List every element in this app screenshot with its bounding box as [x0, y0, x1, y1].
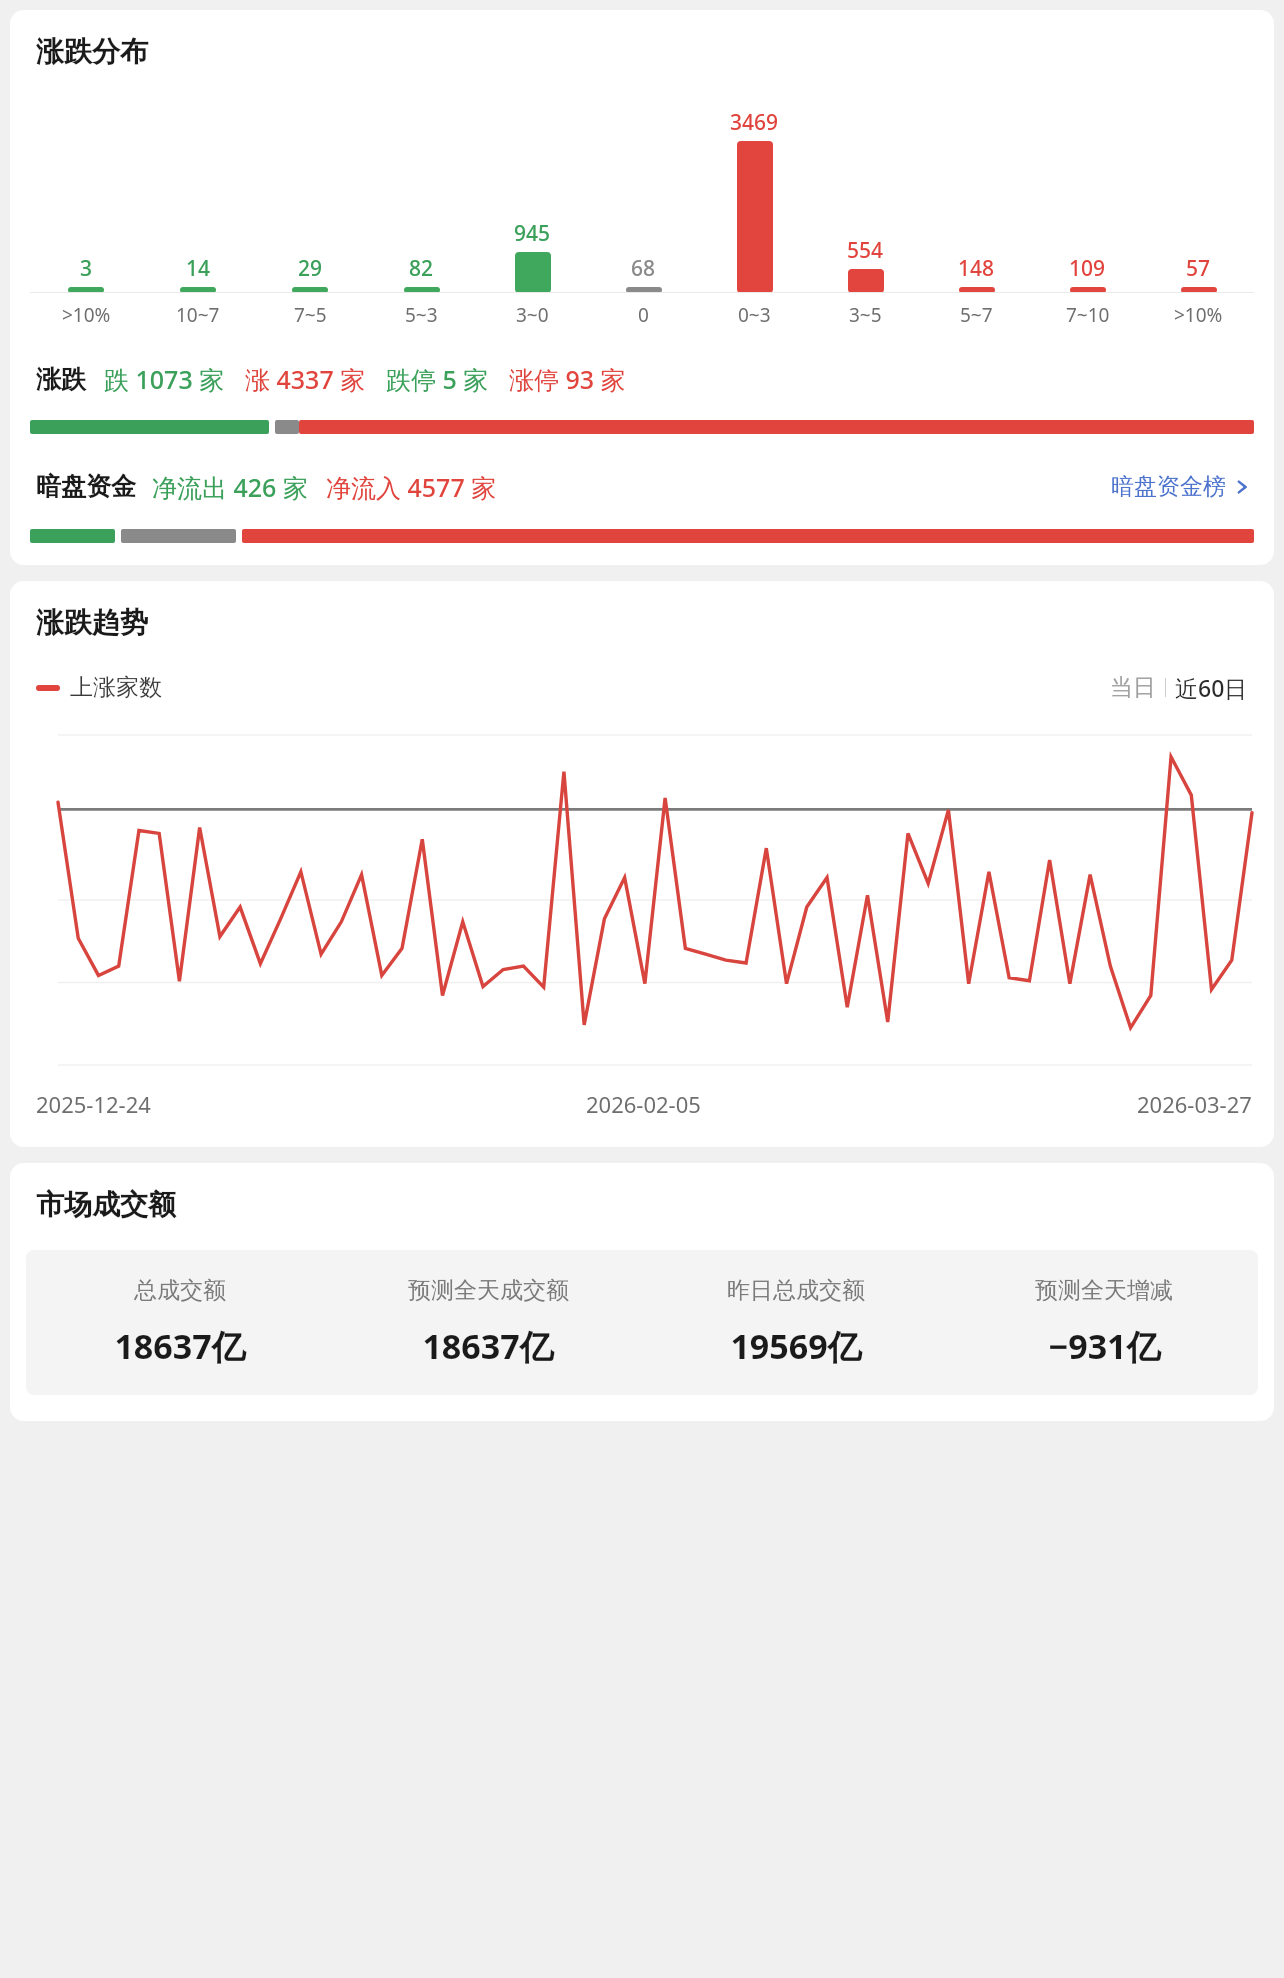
staticText: 涨停 93 家	[509, 362, 626, 396]
button[interactable]: 总成交额	[26, 1250, 1258, 1395]
staticText: 净流出 426 家	[152, 470, 308, 504]
staticText: 预测全天增减	[1035, 1276, 1173, 1305]
staticText: −931亿	[1048, 1323, 1161, 1369]
staticText: 暗盘资金	[36, 471, 136, 502]
staticText: 57	[1186, 254, 1211, 283]
button[interactable]: 暗盘资金榜	[1107, 468, 1254, 505]
staticText: 当日	[1110, 673, 1156, 702]
staticText: 68	[631, 254, 656, 283]
button[interactable]: 当日	[1106, 668, 1252, 707]
staticText: 18637亿	[422, 1323, 554, 1369]
staticText: 10~7	[176, 302, 220, 328]
staticText: 148	[958, 254, 995, 283]
staticText: >10%	[62, 302, 111, 328]
staticText: 昨日总成交额	[727, 1276, 865, 1305]
staticText: 19569亿	[730, 1323, 862, 1369]
staticText: 近60日	[1175, 672, 1248, 703]
staticText: 7~5	[294, 302, 327, 328]
staticText: 0	[638, 302, 649, 328]
staticText: 5~3	[405, 302, 438, 328]
staticText: 2026-02-05	[586, 1089, 701, 1119]
staticText: 涨 4337 家	[245, 362, 366, 396]
staticText: 2026-03-27	[1137, 1089, 1252, 1119]
staticText: 18637亿	[114, 1323, 246, 1369]
staticText: 市场成交额	[36, 1187, 176, 1222]
staticText: 0~3	[738, 302, 771, 328]
staticText: 2025-12-24	[36, 1089, 151, 1119]
staticText: 预测全天成交额	[408, 1276, 569, 1305]
staticText: 29	[298, 254, 323, 283]
other: 查看暗盘资金榜	[1234, 479, 1250, 495]
staticText: 554	[847, 236, 884, 265]
staticText: 109	[1069, 254, 1106, 283]
staticText: >10%	[1174, 302, 1223, 328]
staticText: 3~5	[849, 302, 882, 328]
staticText: 暗盘资金榜	[1111, 472, 1226, 501]
staticText: 涨跌分布	[36, 34, 148, 69]
staticText: 总成交额	[134, 1276, 226, 1305]
staticText: 5~7	[960, 302, 993, 328]
staticText: 7~10	[1066, 302, 1110, 328]
staticText: 3~0	[516, 302, 549, 328]
staticText: 945	[514, 219, 551, 248]
staticText: 上涨家数	[70, 673, 162, 702]
staticText: 跌 1073 家	[104, 362, 225, 396]
staticText: 涨跌	[36, 364, 86, 395]
staticText: 3	[80, 254, 93, 283]
staticText: 净流入 4577 家	[326, 470, 497, 504]
staticText: 14	[186, 254, 211, 283]
staticText: 82	[409, 254, 434, 283]
staticText: 涨跌趋势	[36, 605, 148, 640]
staticText: 3469	[730, 108, 779, 137]
staticText: 跌停 5 家	[386, 362, 489, 396]
button[interactable]: 涨跌	[10, 362, 1274, 396]
